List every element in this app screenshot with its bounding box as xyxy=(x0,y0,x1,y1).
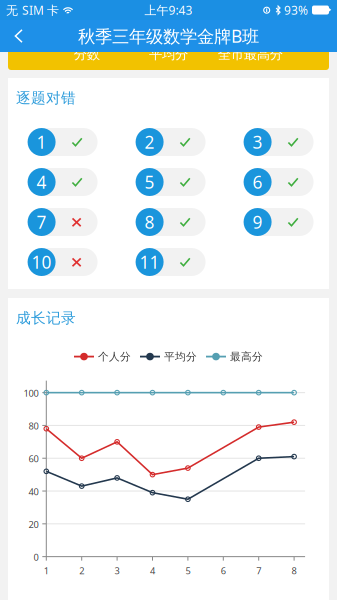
staticText: 上午9:43 xyxy=(144,2,192,18)
button[interactable]: 9 xyxy=(244,208,314,236)
staticText: 平均分 xyxy=(149,46,188,62)
staticText: 平均分 xyxy=(164,350,197,363)
button[interactable]: 6 xyxy=(244,168,314,196)
staticText: 100 xyxy=(23,387,38,399)
staticText: 1 xyxy=(44,564,49,577)
button[interactable]: 3 xyxy=(244,128,314,156)
staticText: 11 xyxy=(140,250,160,273)
staticText: 80 xyxy=(28,420,38,432)
button[interactable]: 8 xyxy=(136,208,206,236)
staticText: 秋季三年级数学金牌B班 xyxy=(78,24,259,47)
button[interactable]: 10 xyxy=(28,248,98,276)
staticText: 6 xyxy=(253,170,263,193)
staticText: 6 xyxy=(221,564,226,577)
staticText: 3 xyxy=(115,564,120,577)
staticText: 7 xyxy=(256,564,261,577)
staticText: 93% xyxy=(284,2,308,18)
staticText: 8 xyxy=(145,210,155,233)
staticText: 7 xyxy=(37,210,47,233)
button[interactable]: 7 xyxy=(28,208,98,236)
staticText: 2 xyxy=(145,130,155,153)
staticText: 逐题对错 xyxy=(16,89,76,107)
staticText: 无 SIM 卡 xyxy=(6,2,59,18)
staticText: 成长记录 xyxy=(16,309,76,327)
staticText: 10 xyxy=(32,250,52,273)
staticText: 全市最高分 xyxy=(218,46,283,62)
staticText: 0 xyxy=(33,551,38,563)
staticText: 分数 xyxy=(74,46,100,62)
staticText: 40 xyxy=(28,485,38,498)
staticText: 4 xyxy=(150,564,155,577)
button[interactable]: 返回 xyxy=(0,21,35,51)
staticText: 8 xyxy=(292,564,297,577)
button[interactable]: 5 xyxy=(136,168,206,196)
staticText: 4 xyxy=(37,170,47,193)
staticText: 60 xyxy=(28,452,38,465)
staticText: 1 xyxy=(37,130,47,153)
staticText: 5 xyxy=(185,564,190,577)
staticText: 20 xyxy=(28,518,38,530)
staticText: 最高分 xyxy=(230,350,263,363)
staticText: 2 xyxy=(79,564,84,577)
button[interactable]: 4 xyxy=(28,168,98,196)
button[interactable]: 1 xyxy=(28,128,98,156)
staticText: 个人分 xyxy=(98,350,131,363)
staticText: 9 xyxy=(253,210,263,233)
staticText: 5 xyxy=(145,170,155,193)
staticText: 3 xyxy=(253,130,263,153)
button[interactable]: 2 xyxy=(136,128,206,156)
button[interactable]: 11 xyxy=(136,248,206,276)
